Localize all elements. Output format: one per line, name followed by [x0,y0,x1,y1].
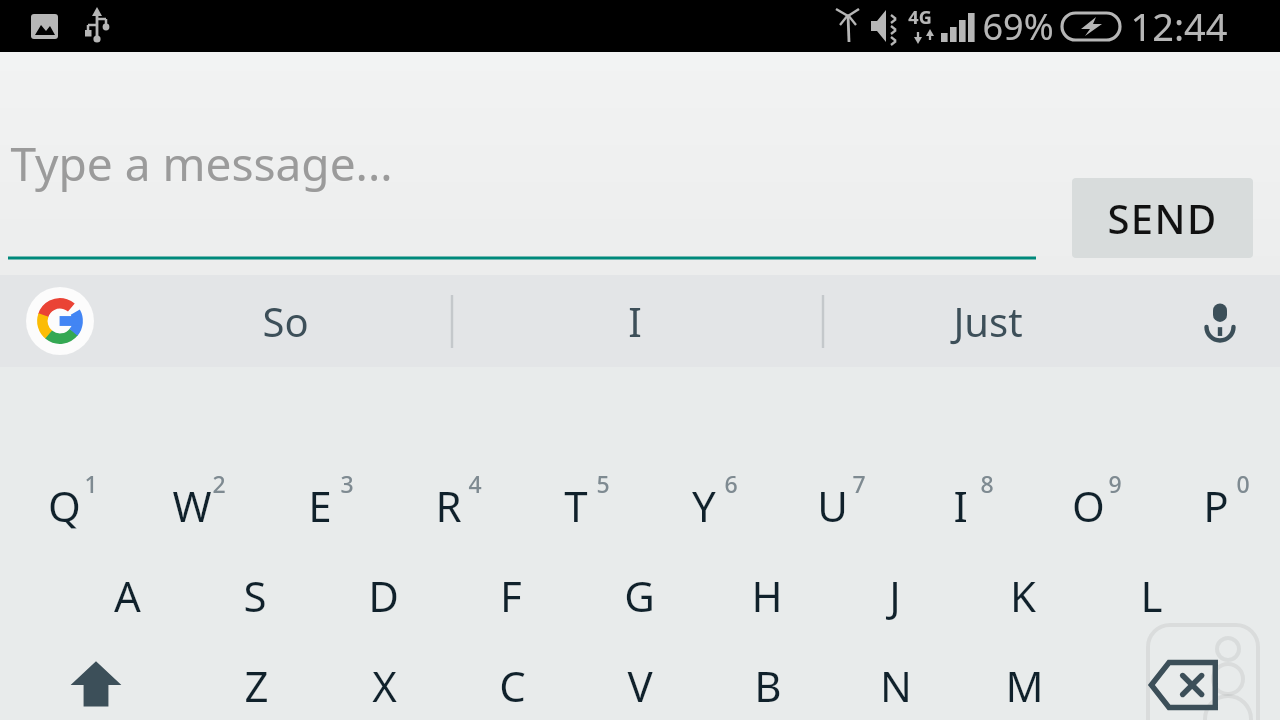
staticText: G [624,567,655,624]
staticText: 1 [84,468,98,499]
button[interactable]: B [704,640,832,720]
staticText: 4G [908,5,932,30]
staticText: 6 [724,468,738,499]
button[interactable]: T [512,460,640,550]
staticText: SEND [1107,191,1218,245]
staticText: F [500,567,522,624]
button[interactable]: H [703,550,831,640]
staticText: Y [692,477,716,534]
button[interactable]: Z [192,640,320,720]
button[interactable]: Backspace [1128,640,1240,720]
staticText: K [1010,567,1036,624]
staticText: 0 [1236,468,1250,499]
staticText: X [372,657,397,714]
staticText: V [627,657,653,714]
button[interactable]: V [576,640,704,720]
staticText: J [889,567,901,624]
staticText: B [754,657,782,714]
staticText: I [953,477,968,534]
button[interactable]: G [575,550,703,640]
staticText: Q [48,477,81,534]
staticText: 5 [596,468,610,499]
button[interactable]: SEND [1072,178,1253,258]
staticText: 12:44 [1130,0,1228,52]
button[interactable]: I [535,275,735,367]
staticText: 2 [212,468,226,499]
button[interactable]: Just [888,275,1088,367]
button[interactable]: Y [640,460,768,550]
button[interactable]: A [63,550,191,640]
button[interactable]: P [1152,460,1280,550]
button[interactable]: E [256,460,384,550]
staticText: Just [953,294,1023,348]
button[interactable]: M [960,640,1088,720]
button[interactable]: So [185,275,385,367]
staticText: I [628,294,642,348]
staticText: L [1140,567,1163,624]
button[interactable]: J [831,550,959,640]
staticText: H [751,567,783,624]
button[interactable]: D [319,550,447,640]
button[interactable]: Voice input [1186,287,1254,355]
button[interactable]: N [832,640,960,720]
staticText: A [114,567,141,624]
staticText: D [368,567,399,624]
staticText: W [172,477,212,534]
staticText: U [817,477,848,534]
staticText: Z [244,657,269,714]
staticText: 69% [982,2,1054,51]
button[interactable]: F [447,550,575,640]
button[interactable]: U [768,460,896,550]
staticText: So [262,294,309,348]
staticText: E [308,477,332,534]
button[interactable]: X [320,640,448,720]
button[interactable]: S [191,550,319,640]
staticText: 9 [1108,468,1122,499]
staticText: 4 [468,468,482,499]
button[interactable]: I [896,460,1024,550]
button[interactable]: Q [0,460,128,550]
button[interactable]: L [1087,550,1215,640]
staticText: 7 [852,468,866,499]
staticText: 3 [340,468,354,499]
button[interactable]: O [1024,460,1152,550]
button[interactable]: W [128,460,256,550]
staticText: C [499,657,526,714]
button[interactable]: R [384,460,512,550]
button[interactable]: Shift [40,640,152,720]
staticText: N [880,657,912,714]
staticText: S [243,567,267,624]
staticText: R [435,477,462,534]
staticText: O [1072,477,1105,534]
staticText: P [1203,477,1229,534]
staticText: M [1005,657,1044,714]
staticText: T [564,477,588,534]
staticText: Type a message... [10,132,393,195]
button[interactable]: Google [26,287,94,355]
button[interactable]: C [448,640,576,720]
button[interactable]: K [959,550,1087,640]
staticText: 8 [980,468,994,499]
